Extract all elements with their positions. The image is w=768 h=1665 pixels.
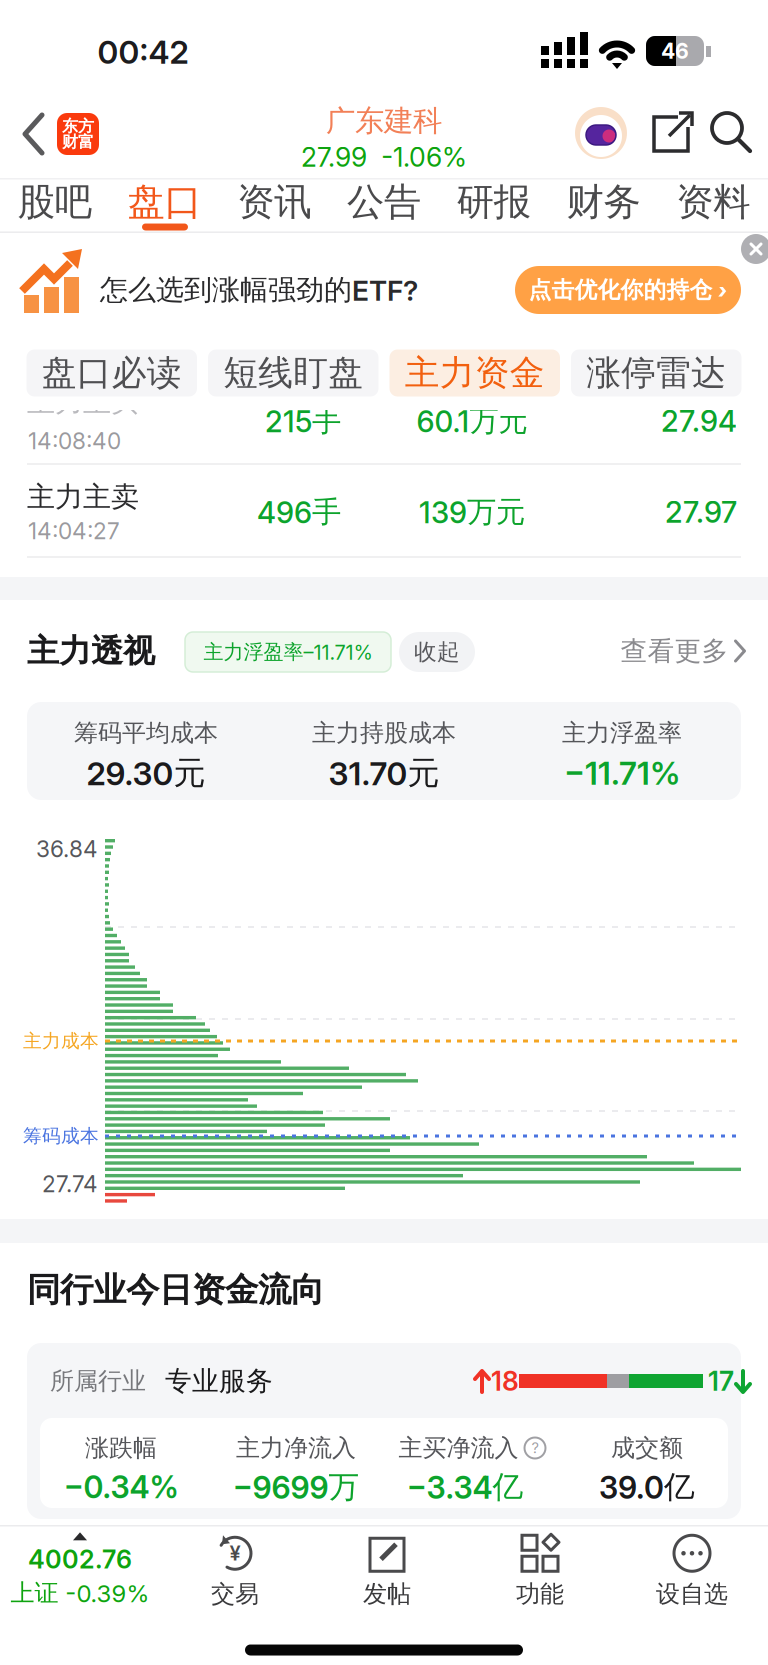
staticText: 公告 xyxy=(347,179,421,225)
staticText: 设自选 xyxy=(656,1579,728,1609)
staticText: 4002.76 xyxy=(28,1544,132,1574)
button[interactable]: 股吧 xyxy=(0,179,110,225)
staticText: 东方 xyxy=(62,116,94,136)
button[interactable]: 点击优化你的持仓 › xyxy=(515,266,741,314)
staticText: ¥ xyxy=(229,1541,240,1565)
staticText: 496手 xyxy=(257,494,341,530)
button[interactable]: 研报 xyxy=(439,179,549,225)
staticText: 收起 xyxy=(414,638,460,666)
button[interactable]: Assistant xyxy=(575,107,627,159)
staticText: 研报 xyxy=(457,179,531,225)
button[interactable]: 资讯 xyxy=(219,179,329,225)
button[interactable]: 收起 xyxy=(399,632,475,672)
staticText: 00:42 xyxy=(97,33,188,71)
staticText: 财务 xyxy=(566,179,640,225)
button[interactable]: 查看更多 xyxy=(620,635,747,667)
staticText: 27.74 xyxy=(42,1171,98,1197)
staticText: 盘口 xyxy=(128,179,202,225)
staticText: 主力主买 xyxy=(27,385,139,419)
staticText: 怎么选到涨幅强劲的ETF? xyxy=(100,273,418,307)
staticText: 上证 -0.39% xyxy=(10,1578,149,1608)
staticText: 资讯 xyxy=(237,179,311,225)
staticText: 215手 xyxy=(265,403,341,439)
staticText: 139万元 xyxy=(419,494,525,530)
staticText: 查看更多 xyxy=(620,635,728,667)
staticText: 专业服务 xyxy=(165,1365,273,1397)
staticText: 46 xyxy=(661,38,689,64)
staticText: 29.30元 xyxy=(86,753,205,793)
staticText: 功能 xyxy=(516,1579,564,1609)
staticText: 主买净流入 xyxy=(398,1433,518,1463)
button[interactable]: 盘口 xyxy=(110,179,219,225)
staticText: 发帖 xyxy=(363,1579,411,1609)
staticText: 主力净流入 xyxy=(236,1433,356,1463)
button[interactable]: 主力资金 xyxy=(389,349,560,396)
button[interactable]: 短线盯盘 xyxy=(208,349,378,396)
staticText: 27.94 xyxy=(661,404,737,438)
staticText: 14:04:27 xyxy=(28,518,120,544)
button[interactable]: ¥ xyxy=(211,1533,259,1609)
staticText: 盘口必读 xyxy=(42,352,182,394)
staticText: 18 xyxy=(491,1365,519,1397)
button[interactable]: 4002.76 xyxy=(10,1532,149,1608)
staticText: 主力浮盈率–11.71% xyxy=(203,640,372,664)
staticText: −11.71% xyxy=(564,754,680,792)
staticText: −9699万 xyxy=(232,1468,359,1506)
staticText: 所属行业 xyxy=(50,1366,146,1396)
staticText: 交易 xyxy=(211,1579,259,1609)
button[interactable]: 涨停雷达 xyxy=(571,349,741,396)
button[interactable]: 财务 xyxy=(549,179,658,225)
staticText: 主力浮盈率 xyxy=(562,718,682,748)
staticText: 主力成本 xyxy=(23,1029,99,1052)
staticText: 27.97 xyxy=(665,495,737,529)
staticText: 主力透视 xyxy=(27,631,155,671)
button[interactable]: 发帖 xyxy=(363,1533,411,1609)
button[interactable]: Close xyxy=(741,234,768,264)
staticText: 筹码平均成本 xyxy=(74,718,218,748)
staticText: 股吧 xyxy=(18,179,92,225)
staticText: 短线盯盘 xyxy=(223,352,363,394)
staticText: 36.84 xyxy=(36,836,98,862)
staticText: 广东建科 xyxy=(326,103,442,139)
staticText: 主力持股成本 xyxy=(312,718,456,748)
button[interactable]: Back xyxy=(0,88,768,178)
staticText: 同行业今日资金流向 xyxy=(27,1269,324,1310)
button[interactable]: 盘口必读 xyxy=(26,349,197,396)
staticText: 17 xyxy=(708,1365,734,1397)
staticText: −3.34亿 xyxy=(406,1468,523,1506)
staticText: 31.70元 xyxy=(328,753,439,793)
button[interactable]: 功能 xyxy=(516,1533,564,1609)
staticText: 主力资金 xyxy=(405,352,545,394)
staticText: 涨停雷达 xyxy=(586,352,726,394)
button[interactable]: Share xyxy=(648,111,694,155)
button[interactable]: 资料 xyxy=(658,179,768,225)
staticText: 39.0亿 xyxy=(599,1468,695,1506)
staticText: 涨跌幅 xyxy=(85,1433,157,1463)
staticText: 财富 xyxy=(62,132,94,152)
staticText: −0.34% xyxy=(63,1469,178,1505)
staticText: 成交额 xyxy=(611,1433,683,1463)
staticText: 点击优化你的持仓 › xyxy=(528,276,727,304)
staticText: ? xyxy=(531,1439,538,1457)
staticText: 资料 xyxy=(676,179,750,225)
staticText: 60.1万元 xyxy=(416,403,527,439)
staticText: 主力主卖 xyxy=(27,480,139,514)
button[interactable]: 公告 xyxy=(329,179,439,225)
staticText: 27.99 -1.06% xyxy=(301,141,467,173)
button[interactable]: 设自选 xyxy=(656,1533,728,1609)
staticText: 筹码成本 xyxy=(23,1124,99,1147)
button[interactable]: Search xyxy=(710,111,752,153)
staticText: 14:08:40 xyxy=(28,428,121,454)
